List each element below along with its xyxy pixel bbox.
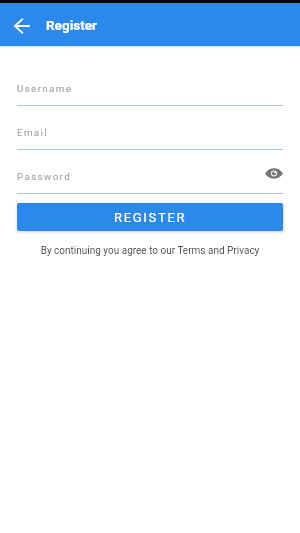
staticText: Email xyxy=(17,127,49,138)
button[interactable]: Back xyxy=(1,6,41,46)
button[interactable]: REGISTER xyxy=(17,203,283,231)
button[interactable]: Show password xyxy=(263,162,285,184)
staticText: Password xyxy=(17,171,72,182)
staticText: By continuing you agree to our Terms and… xyxy=(17,245,283,257)
staticText: Register xyxy=(46,17,97,33)
staticText: REGISTER xyxy=(114,210,187,225)
staticText: Username xyxy=(17,83,73,94)
